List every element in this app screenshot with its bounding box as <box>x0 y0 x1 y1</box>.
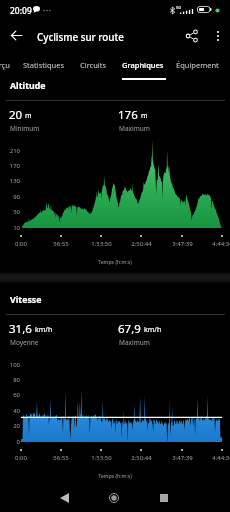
staticText: 100 <box>9 361 20 369</box>
staticText: km/h <box>35 325 53 335</box>
button[interactable]: More options <box>204 22 230 49</box>
button[interactable]: Circuits <box>74 52 115 80</box>
button[interactable]: Back <box>3 22 30 49</box>
staticText: 130 <box>9 177 20 185</box>
staticText: Maximum <box>119 124 150 133</box>
staticText: 2:50:44 <box>131 454 152 462</box>
button[interactable]: Statistiques <box>17 52 68 80</box>
staticText: Moyenne <box>10 338 39 347</box>
staticText: 4:44:34 <box>212 240 230 248</box>
staticText: Temps (h:m:s) <box>98 472 132 479</box>
staticText: 56:55 <box>53 240 69 248</box>
button[interactable]: Équipement <box>170 52 230 80</box>
staticText: 20 <box>9 107 23 123</box>
staticText: 20 <box>13 422 20 430</box>
staticText: 3:47:39 <box>172 240 193 248</box>
button[interactable]: Back <box>50 484 78 512</box>
staticText: 0 <box>16 438 20 446</box>
staticText: Statistiques <box>23 60 64 70</box>
staticText: 170 <box>9 162 20 170</box>
staticText: 210 <box>9 147 20 155</box>
staticText: Altitude <box>10 80 46 92</box>
staticText: 1:53:50 <box>91 454 112 462</box>
staticText: Vitesse <box>10 294 42 306</box>
staticText: 31,6 <box>9 321 32 337</box>
staticText: 176 <box>118 107 138 123</box>
staticText: 50 <box>176 5 181 11</box>
button[interactable]: Aperçu <box>0 52 13 80</box>
staticText: 1:53:50 <box>91 240 112 248</box>
staticText: 4:44:34 <box>212 454 230 462</box>
button[interactable]: Recent apps <box>150 484 178 512</box>
staticText: 40 <box>13 407 20 415</box>
staticText: Cyclisme sur route <box>37 31 124 44</box>
staticText: Graphiques <box>122 60 164 70</box>
button[interactable]: Graphiques <box>116 52 170 80</box>
staticText: 60 <box>13 391 20 399</box>
staticText: m <box>25 111 32 121</box>
button[interactable]: Home <box>100 484 128 512</box>
staticText: Maximum <box>119 338 150 347</box>
staticText: 2:50:44 <box>131 240 152 248</box>
staticText: Circuits <box>80 60 107 70</box>
staticText: m <box>141 111 148 121</box>
staticText: Temps (h:m:s) <box>98 258 132 265</box>
staticText: 0:00 <box>15 454 27 462</box>
staticText: 0:00 <box>15 240 27 248</box>
staticText: 56:55 <box>53 454 69 462</box>
staticText: Aperçu <box>0 60 10 70</box>
staticText: 80 <box>13 376 20 384</box>
staticText: 90 <box>13 193 20 201</box>
staticText: 10 <box>13 224 20 232</box>
staticText: Équipement <box>176 60 219 70</box>
staticText: 20:09 <box>10 5 32 17</box>
staticText: Minimum <box>10 124 40 133</box>
staticText: 67,9 <box>118 321 141 337</box>
staticText: km/h <box>144 325 162 335</box>
staticText: 3:47:39 <box>172 454 193 462</box>
button[interactable]: Share <box>178 22 205 49</box>
staticText: 50 <box>13 208 20 216</box>
